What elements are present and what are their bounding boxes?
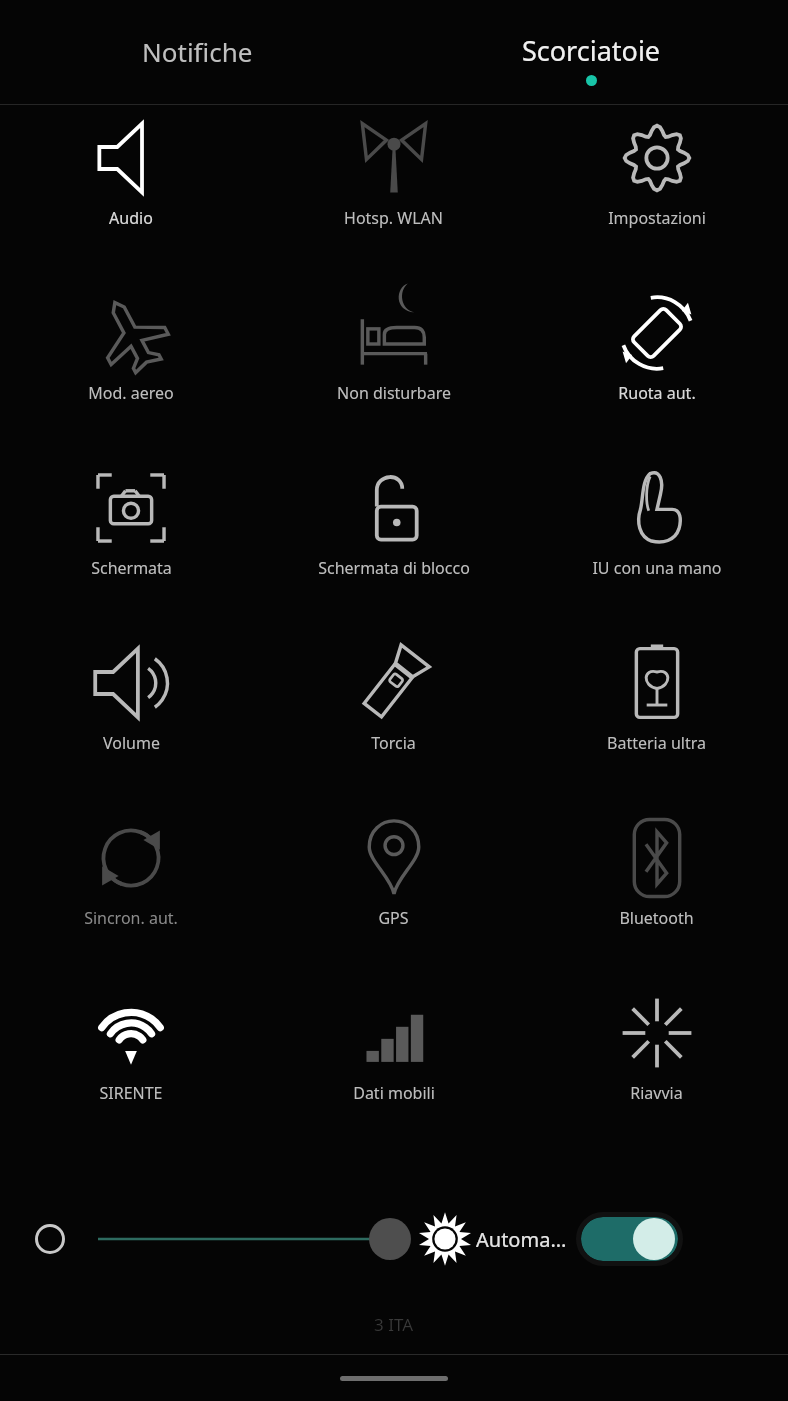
button[interactable]: Volume bbox=[0, 630, 262, 805]
staticText: Dati mobili bbox=[353, 1082, 435, 1104]
button[interactable]: Brightness minimum bbox=[20, 1209, 80, 1269]
staticText: Bluetooth bbox=[619, 907, 694, 929]
staticText: Mod. aereo bbox=[88, 382, 174, 404]
staticText: Scorciatoie bbox=[522, 32, 661, 69]
staticText: GPS bbox=[378, 907, 409, 929]
button[interactable]: Batteria ultra bbox=[525, 630, 788, 805]
staticText: Batteria ultra bbox=[607, 732, 706, 754]
staticText: Sincron. aut. bbox=[84, 907, 178, 929]
button[interactable]: Brightness slider bbox=[80, 1204, 410, 1274]
button[interactable]: GPS bbox=[262, 805, 525, 980]
button[interactable]: Schermata di blocco bbox=[262, 455, 525, 630]
staticText: Hotsp. WLAN bbox=[344, 207, 443, 229]
button[interactable]: Sincron. aut. bbox=[0, 805, 262, 980]
staticText: Automa... bbox=[476, 1226, 567, 1253]
button[interactable]: Mod. aereo bbox=[0, 280, 262, 455]
button[interactable]: Bluetooth bbox=[525, 805, 788, 980]
button[interactable]: Automatic brightness toggle bbox=[577, 1213, 682, 1265]
staticText: Impostazioni bbox=[608, 207, 706, 229]
staticText: Ruota aut. bbox=[618, 382, 696, 404]
button[interactable]: SIRENTE bbox=[0, 980, 262, 1155]
staticText: IU con una mano bbox=[592, 557, 722, 579]
button[interactable]: Notifiche bbox=[0, 0, 394, 105]
staticText: Riavvia bbox=[630, 1082, 683, 1104]
staticText: Schermata di blocco bbox=[318, 557, 470, 579]
button[interactable]: Schermata bbox=[0, 455, 262, 630]
button[interactable]: Torcia bbox=[262, 630, 525, 805]
staticText: SIRENTE bbox=[99, 1082, 163, 1104]
button[interactable]: IU con una mano bbox=[525, 455, 788, 630]
button[interactable]: Riavvia bbox=[525, 980, 788, 1155]
staticText: Volume bbox=[103, 732, 160, 754]
staticText: Torcia bbox=[371, 732, 416, 754]
button[interactable]: Hotsp. WLAN bbox=[262, 105, 525, 280]
staticText: Schermata bbox=[91, 557, 172, 579]
staticText: Non disturbare bbox=[337, 382, 451, 404]
staticText: Audio bbox=[109, 207, 153, 229]
button[interactable]: Scorciatoie bbox=[394, 0, 788, 105]
button[interactable]: Non disturbare bbox=[262, 280, 525, 455]
button[interactable]: Ruota aut. bbox=[525, 280, 788, 455]
button[interactable]: Dati mobili bbox=[262, 980, 525, 1155]
button[interactable]: Audio bbox=[0, 105, 262, 280]
button[interactable]: Impostazioni bbox=[525, 105, 788, 280]
staticText: Notifiche bbox=[142, 34, 253, 69]
staticText: 3 ITA bbox=[374, 1313, 414, 1336]
